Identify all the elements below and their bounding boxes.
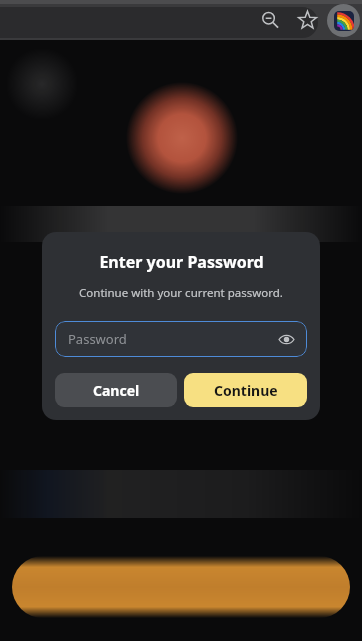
staticText: Enter your Password: [99, 251, 264, 273]
button[interactable]: Continue: [184, 373, 307, 407]
button[interactable]: Profile: [327, 4, 360, 37]
staticText: Password: [68, 330, 275, 348]
button[interactable]: Zoom out: [254, 4, 286, 36]
button[interactable]: Show password: [275, 328, 297, 350]
button[interactable]: Password: [55, 321, 307, 357]
staticText: Cancel: [93, 381, 140, 400]
button[interactable]: Cancel: [55, 373, 177, 407]
button[interactable]: Bookmark: [291, 4, 323, 36]
staticText: Continue: [214, 381, 278, 400]
staticText: Continue with your current password.: [79, 285, 283, 301]
